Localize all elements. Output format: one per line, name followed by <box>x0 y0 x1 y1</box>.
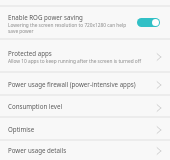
other: Open <box>155 101 163 114</box>
staticText: Power usage firewall (power-intensive ap… <box>8 80 136 88</box>
staticText: Protected apps <box>8 49 52 57</box>
button[interactable]: Enable ROG power saving <box>137 18 160 27</box>
button[interactable]: Power usage firewall (power-intensive ap… <box>0 73 170 96</box>
staticText: Consumption level <box>8 102 63 110</box>
button[interactable]: Optimise <box>0 118 170 141</box>
button[interactable]: Protected apps <box>0 40 170 73</box>
other: Open <box>155 144 163 157</box>
staticText: Lowering the screen resolution to 720x12… <box>8 22 134 34</box>
staticText: Enable ROG power saving <box>8 13 83 21</box>
staticText: Allow 10 apps to keep running after the … <box>8 58 141 65</box>
button[interactable]: Consumption level <box>0 96 170 118</box>
other: Open <box>155 50 163 63</box>
other: Open <box>155 78 163 91</box>
other: Open <box>155 123 163 136</box>
staticText: Optimise <box>8 125 35 133</box>
staticText: Power usage details <box>8 146 67 154</box>
button[interactable]: Power usage details <box>0 141 170 160</box>
button[interactable]: Enable ROG power saving <box>0 7 170 40</box>
